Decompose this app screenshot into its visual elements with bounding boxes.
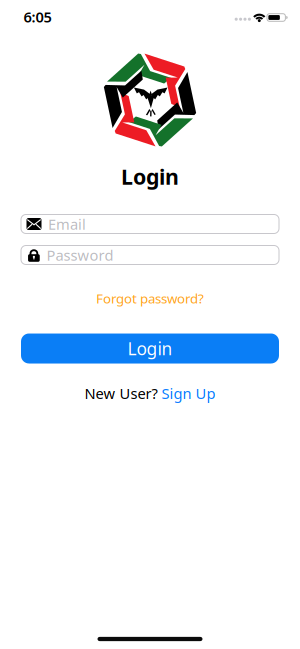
button[interactable]: Login [21, 333, 279, 363]
staticText: Email [48, 214, 86, 234]
button[interactable]: Forgot password? [96, 289, 204, 307]
button[interactable]: Email [21, 214, 279, 233]
button[interactable]: Sign Up [161, 384, 215, 403]
staticText: Forgot password? [96, 289, 204, 307]
staticText: Login [121, 162, 179, 191]
staticText: New User? [84, 384, 157, 403]
button[interactable]: Password [21, 245, 279, 264]
staticText: 6:05 [23, 7, 51, 27]
staticText: Sign Up [161, 384, 215, 403]
staticText: Login [127, 337, 172, 360]
staticText: Password [46, 245, 113, 265]
